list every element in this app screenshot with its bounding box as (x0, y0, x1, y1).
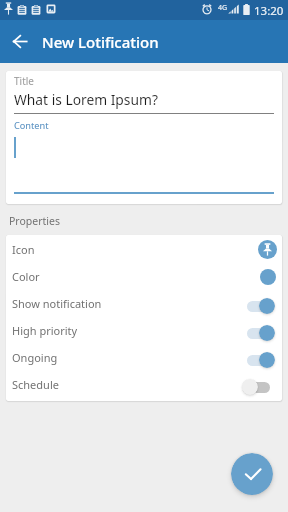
button[interactable]: Schedule (6, 371, 282, 398)
button[interactable]: Show notification (6, 290, 282, 317)
button[interactable]: Icon (6, 236, 282, 263)
button[interactable]: Ongoing (6, 344, 282, 371)
staticText: 4G (218, 3, 228, 13)
button[interactable]: Back (0, 22, 39, 61)
staticText: Color (12, 269, 40, 284)
staticText: Schedule (12, 377, 59, 392)
staticText: Show notification (12, 296, 102, 311)
staticText: What is Lorem Ipsum? (14, 90, 158, 109)
staticText: High priority (12, 323, 78, 338)
staticText: Title (14, 74, 34, 88)
button[interactable]: Color (6, 263, 282, 290)
staticText: Icon (12, 242, 35, 257)
staticText: Content (14, 119, 49, 132)
button[interactable]: Save (231, 453, 273, 495)
staticText: 13:20 (254, 3, 284, 19)
button[interactable]: High priority (6, 317, 282, 344)
staticText: Ongoing (12, 350, 58, 365)
staticText: Properties (9, 214, 60, 228)
staticText: New Lotification (42, 32, 159, 52)
